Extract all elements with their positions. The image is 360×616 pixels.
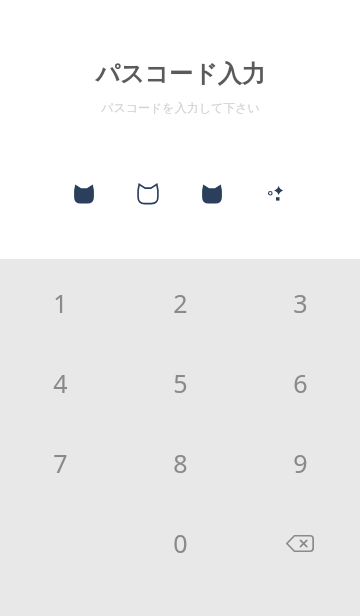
staticText: 2	[173, 286, 188, 320]
button[interactable]: 2	[120, 263, 240, 343]
button[interactable]: 6	[240, 343, 360, 423]
button[interactable]: 1	[0, 263, 120, 343]
staticText: パスコード入力	[95, 59, 266, 89]
staticText: 9	[293, 446, 308, 480]
staticText: 4	[53, 366, 68, 400]
button[interactable]: 8	[120, 423, 240, 503]
staticText: 0	[173, 526, 188, 560]
button[interactable]: 0	[120, 503, 240, 583]
staticText: 7	[53, 446, 68, 480]
button[interactable]: 4	[0, 343, 120, 423]
staticText: 8	[173, 446, 188, 480]
staticText: パスコードを入力して下さい	[101, 100, 260, 115]
button[interactable]: Backspace	[240, 503, 360, 583]
button[interactable]: 5	[120, 343, 240, 423]
button[interactable]: 7	[0, 423, 120, 503]
button[interactable]: 9	[240, 423, 360, 503]
staticText: 5	[173, 366, 188, 400]
staticText: 1	[53, 286, 68, 320]
staticText: 3	[293, 286, 308, 320]
button[interactable]: 3	[240, 263, 360, 343]
staticText: 6	[293, 366, 308, 400]
